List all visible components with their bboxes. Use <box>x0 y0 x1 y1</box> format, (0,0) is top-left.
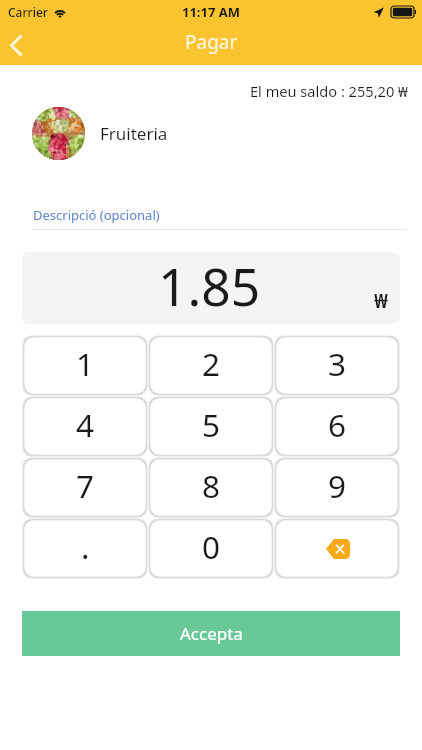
staticText: ₩ <box>374 288 389 314</box>
staticText: 4 <box>76 403 95 446</box>
button[interactable]: 9 <box>274 457 400 518</box>
staticText: Descripció (opcional) <box>33 206 160 224</box>
button[interactable]: . <box>22 518 148 579</box>
staticText: 7 <box>76 464 95 507</box>
button[interactable]: 3 <box>274 335 400 396</box>
button[interactable]: 0 <box>148 518 274 579</box>
staticText: 6 <box>328 403 347 446</box>
staticText: 9 <box>328 464 347 507</box>
staticText: . <box>81 525 90 568</box>
staticText: 11:17 AM <box>182 3 241 21</box>
button[interactable]: 8 <box>148 457 274 518</box>
button[interactable]: 2 <box>148 335 274 396</box>
staticText: 8 <box>202 464 221 507</box>
button[interactable]: 1.85 <box>22 252 400 324</box>
button[interactable]: 5 <box>148 396 274 457</box>
staticText: 2 <box>202 342 221 385</box>
staticText: Fruiteria <box>100 122 168 145</box>
staticText: 1 <box>76 342 95 385</box>
staticText: Pagar <box>185 29 238 55</box>
staticText: El meu saldo : 255,20 ₩ <box>250 81 408 101</box>
button[interactable]: Descripció (opcional) <box>33 206 406 230</box>
staticText: Carrier <box>8 4 48 20</box>
button[interactable]: 6 <box>274 396 400 457</box>
staticText: 1.85 <box>158 252 261 321</box>
button[interactable]: 1 <box>22 335 148 396</box>
staticText: 5 <box>202 403 221 446</box>
staticText: Accepta <box>180 622 243 645</box>
button[interactable]: Fruiteria <box>32 107 168 160</box>
button[interactable]: 7 <box>22 457 148 518</box>
button[interactable]: Accepta <box>22 611 400 656</box>
staticText: 3 <box>328 342 347 385</box>
button[interactable]: Backspace <box>274 518 400 579</box>
button[interactable]: 4 <box>22 396 148 457</box>
staticText: 0 <box>202 525 221 568</box>
button[interactable]: Back <box>0 26 31 65</box>
